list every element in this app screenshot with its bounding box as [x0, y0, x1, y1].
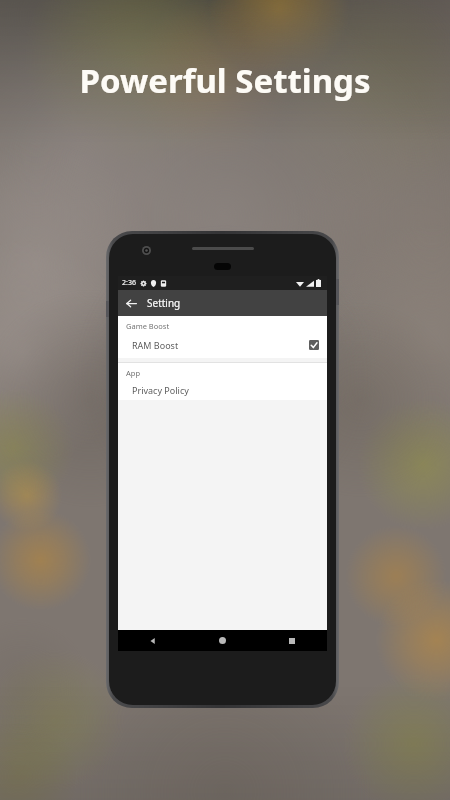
button[interactable]: RAM Boost: [118, 336, 327, 354]
staticText: Privacy Policy: [132, 384, 189, 396]
button[interactable]: Privacy Policy: [118, 382, 327, 397]
staticText: Powerful Settings: [0, 58, 450, 103]
button[interactable]: Home: [187, 630, 257, 651]
button[interactable]: Back: [118, 630, 187, 651]
staticText: 2:36: [122, 278, 136, 288]
button[interactable]: Recents: [257, 630, 327, 651]
staticText: App: [126, 368, 141, 378]
staticText: RAM Boost: [132, 339, 179, 351]
staticText: Setting: [147, 296, 181, 310]
staticText: Game Boost: [126, 321, 170, 331]
button[interactable]: Back: [122, 294, 140, 312]
